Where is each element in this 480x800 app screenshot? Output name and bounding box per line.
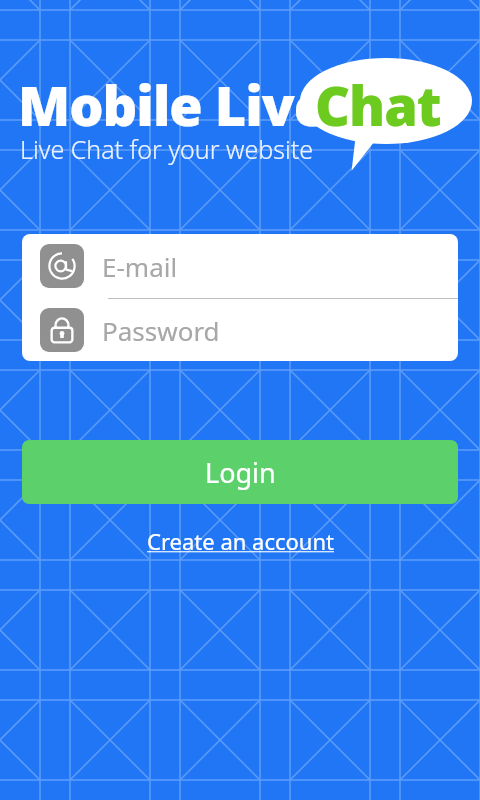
staticText: Login xyxy=(205,454,276,491)
other: Password xyxy=(48,316,76,344)
staticText: Password xyxy=(102,313,220,348)
staticText: E-mail xyxy=(102,249,178,284)
button[interactable]: Email xyxy=(22,234,458,298)
staticText: Live Chat for your website xyxy=(20,132,314,166)
button[interactable]: Login xyxy=(22,440,458,504)
button[interactable]: Password xyxy=(22,299,458,361)
staticText: Chat xyxy=(315,68,441,142)
button[interactable]: Create an account xyxy=(0,524,480,558)
other: Email xyxy=(47,251,77,281)
staticText: Mobile Live xyxy=(18,68,327,142)
staticText: Create an account xyxy=(147,526,334,556)
